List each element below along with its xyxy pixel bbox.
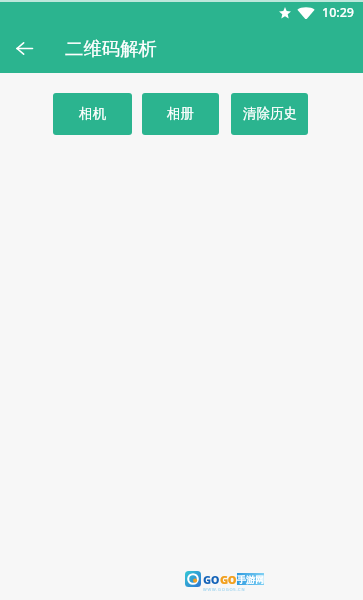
- button[interactable]: 相册: [142, 93, 219, 135]
- button[interactable]: 清除历史: [231, 93, 308, 135]
- staticText: 相册: [167, 105, 194, 122]
- staticText: 手游网: [237, 574, 264, 585]
- staticText: 二维码解析: [65, 37, 157, 60]
- staticText: 10:29: [322, 4, 355, 21]
- staticText: GO: [220, 572, 237, 587]
- staticText: GO: [203, 572, 220, 587]
- staticText: 清除历史: [243, 105, 297, 122]
- button[interactable]: 相机: [53, 93, 132, 135]
- staticText: WWW.GOGO5.CN: [203, 587, 246, 592]
- staticText: 相机: [79, 105, 106, 122]
- button[interactable]: Back: [0, 24, 49, 73]
